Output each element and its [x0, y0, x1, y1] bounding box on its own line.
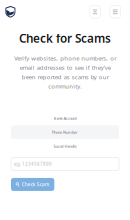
button[interactable]: Social Handle [11, 139, 119, 153]
button[interactable]: Bank Account [11, 111, 119, 125]
button[interactable]: Check Scam [11, 178, 54, 191]
staticText: Phone Number [52, 129, 78, 135]
button[interactable]: Filters [90, 6, 100, 18]
staticText: Verify websites, phone numbers, or email… [14, 54, 116, 90]
staticText: e.g. 1234567890 [14, 161, 52, 167]
button[interactable]: Menu [110, 6, 120, 18]
staticText: Social Handle [53, 143, 76, 149]
staticText: Check Scam [22, 181, 50, 188]
button[interactable]: Phone Number [11, 125, 119, 139]
staticText: Bank Account [53, 115, 76, 121]
staticText: Check for Scams [19, 30, 111, 46]
